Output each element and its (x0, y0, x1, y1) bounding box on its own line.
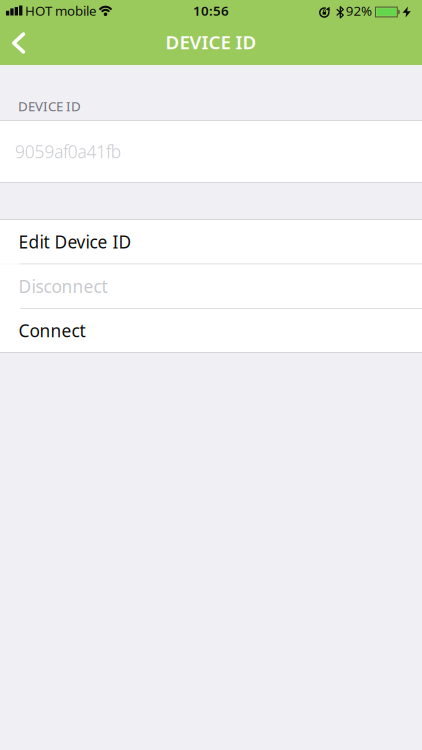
staticText: HOT mobile (25, 2, 97, 19)
staticText: Edit Device ID (18, 230, 131, 253)
staticText: Connect (18, 319, 85, 342)
button[interactable]: Edit Device ID (0, 220, 422, 263)
staticText: DEVICE ID (165, 30, 256, 54)
staticText: DEVICE ID (18, 97, 81, 115)
staticText: 10:56 (193, 2, 229, 19)
button[interactable]: Back (0, 21, 39, 65)
staticText: Disconnect (18, 275, 107, 298)
staticText: 9059af0a41fb (15, 140, 121, 163)
button[interactable]: Device ID (0, 121, 422, 182)
button[interactable]: Disconnect (0, 264, 422, 308)
button[interactable]: Connect (0, 309, 422, 352)
staticText: 92% (346, 2, 372, 19)
